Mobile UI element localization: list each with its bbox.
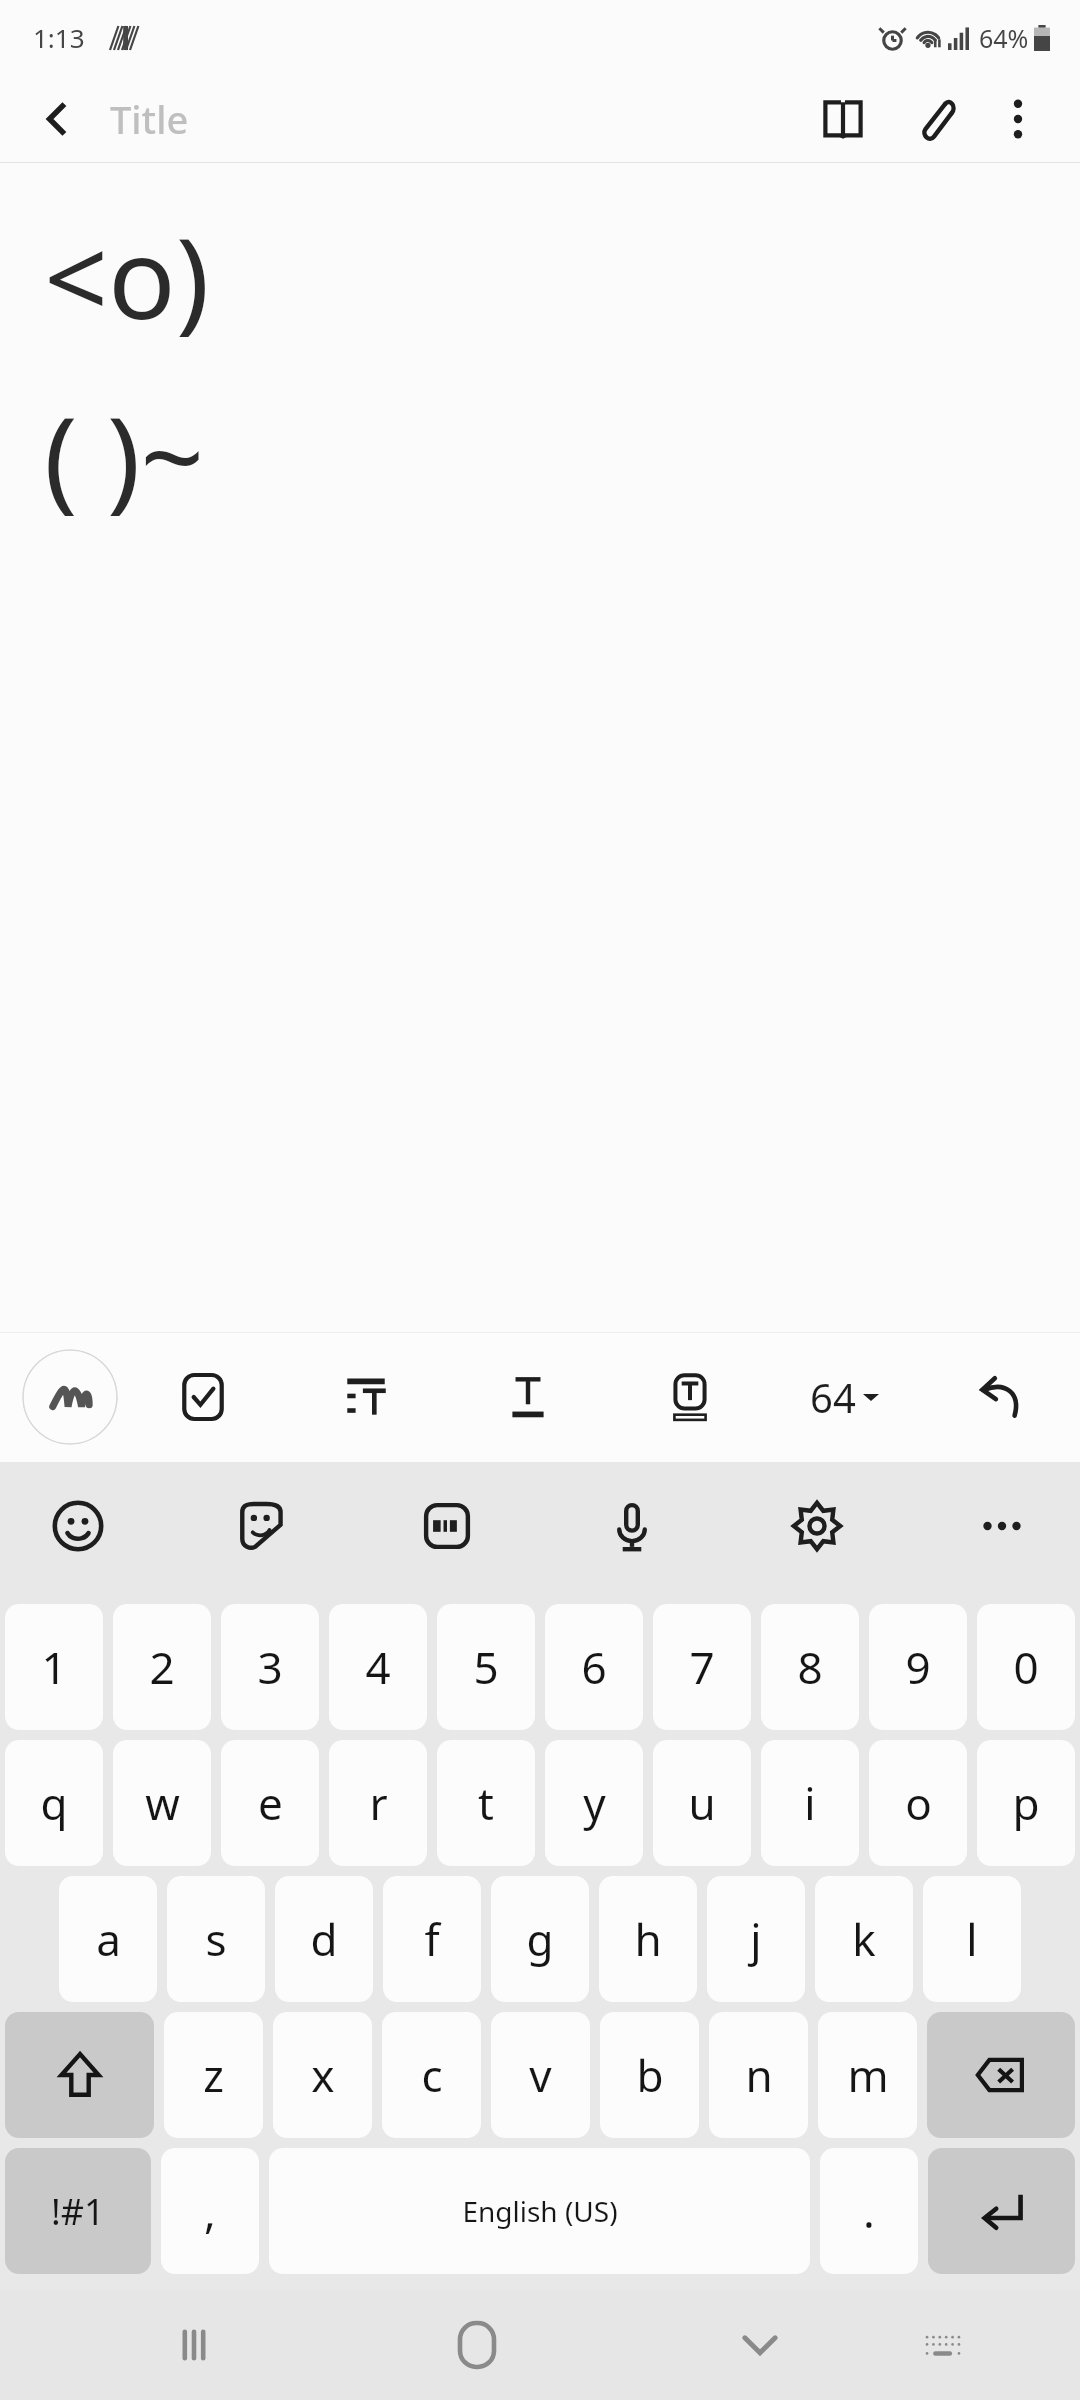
button[interactable]: h	[599, 1876, 697, 2002]
button[interactable]: 6	[545, 1604, 643, 1730]
staticText: q	[40, 1773, 68, 1833]
button[interactable]: 4	[329, 1604, 427, 1730]
staticText: x	[311, 2045, 335, 2105]
button[interactable]: Backspace	[927, 2012, 1075, 2138]
button[interactable]: Reading mode	[806, 82, 880, 156]
button[interactable]: m	[818, 2012, 917, 2138]
staticText: Title	[110, 93, 189, 145]
button[interactable]: Enter	[928, 2148, 1075, 2274]
button[interactable]: ,	[161, 2148, 259, 2274]
button[interactable]: b	[600, 2012, 699, 2138]
button[interactable]: k	[815, 1876, 913, 2002]
staticText: k	[852, 1909, 876, 1969]
button[interactable]: Stickers	[214, 1478, 310, 1574]
button[interactable]: y	[545, 1740, 643, 1866]
button[interactable]: l	[923, 1876, 1021, 2002]
button[interactable]: 3	[221, 1604, 319, 1730]
staticText: !#1	[51, 2187, 105, 2236]
staticText: t	[478, 1773, 494, 1833]
button[interactable]: c	[382, 2012, 481, 2138]
button[interactable]: z	[164, 2012, 263, 2138]
button[interactable]: More options	[986, 87, 1050, 151]
button[interactable]: f	[383, 1876, 481, 2002]
button[interactable]: Paragraph	[318, 1349, 414, 1445]
staticText: g	[526, 1909, 554, 1969]
staticText: 0	[1013, 1637, 1039, 1697]
button[interactable]: 5	[437, 1604, 535, 1730]
staticText: y	[583, 1773, 606, 1833]
button[interactable]: o	[869, 1740, 967, 1866]
button[interactable]: Keyboard settings	[769, 1478, 865, 1574]
button[interactable]: Emoji	[30, 1478, 126, 1574]
button[interactable]: GIF	[399, 1478, 495, 1574]
staticText: u	[688, 1773, 716, 1833]
staticText: c	[421, 2045, 443, 2105]
button[interactable]: !#1	[5, 2148, 151, 2274]
button[interactable]: q	[5, 1740, 103, 1866]
button[interactable]: 0	[977, 1604, 1075, 1730]
button[interactable]: Hide keyboard	[705, 2290, 815, 2400]
button[interactable]: 2	[113, 1604, 211, 1730]
button[interactable]: Checklist	[155, 1349, 251, 1445]
staticText: .	[863, 2181, 875, 2241]
button[interactable]: Attach	[898, 82, 972, 156]
staticText: 64%	[979, 21, 1029, 55]
button[interactable]: Text style	[480, 1349, 576, 1445]
staticText: f	[424, 1909, 440, 1969]
button[interactable]: 9	[869, 1604, 967, 1730]
staticText: s	[205, 1909, 227, 1969]
staticText: 1	[41, 1637, 67, 1697]
staticText: 9	[905, 1637, 931, 1697]
staticText: h	[634, 1909, 662, 1969]
button[interactable]: Text box	[642, 1349, 738, 1445]
button[interactable]: n	[709, 2012, 808, 2138]
button[interactable]: Handwriting	[22, 1349, 118, 1445]
button[interactable]: w	[113, 1740, 211, 1866]
staticText: 5	[473, 1637, 499, 1697]
button[interactable]: 1	[5, 1604, 103, 1730]
staticText: 64	[810, 1370, 856, 1424]
staticText: e	[258, 1773, 283, 1833]
button[interactable]: x	[273, 2012, 372, 2138]
button[interactable]: e	[221, 1740, 319, 1866]
button[interactable]: a	[59, 1876, 157, 2002]
staticText: d	[310, 1909, 338, 1969]
button[interactable]: Voice input	[584, 1478, 680, 1574]
staticText: v	[529, 2045, 552, 2105]
button[interactable]: .	[820, 2148, 918, 2274]
button[interactable]: d	[275, 1876, 373, 2002]
button[interactable]: Recents	[139, 2290, 249, 2400]
button[interactable]: j	[707, 1876, 805, 2002]
staticText: j	[750, 1909, 762, 1969]
staticText: z	[203, 2045, 224, 2105]
button[interactable]: Undo	[951, 1349, 1047, 1445]
button[interactable]: Change keyboard	[893, 2295, 993, 2395]
staticText: English (US)	[462, 2192, 618, 2230]
staticText: ( )~	[44, 378, 205, 531]
staticText: 4	[365, 1637, 391, 1697]
button[interactable]: t	[437, 1740, 535, 1866]
button[interactable]: More	[954, 1478, 1050, 1574]
button[interactable]: i	[761, 1740, 859, 1866]
button[interactable]: English (US)	[269, 2148, 810, 2274]
button[interactable]: 7	[653, 1604, 751, 1730]
staticText: m	[847, 2045, 889, 2105]
button[interactable]: s	[167, 1876, 265, 2002]
staticText: b	[636, 2045, 664, 2105]
staticText: w	[145, 1773, 180, 1833]
button[interactable]: Back	[26, 88, 88, 150]
button[interactable]: Home	[422, 2290, 532, 2400]
button[interactable]: Shift	[5, 2012, 154, 2138]
staticText: a	[96, 1909, 121, 1969]
button[interactable]: v	[491, 2012, 590, 2138]
staticText: 2	[149, 1637, 175, 1697]
button[interactable]: 64	[804, 1349, 885, 1445]
button[interactable]: r	[329, 1740, 427, 1866]
staticText: o	[905, 1773, 932, 1833]
button[interactable]: g	[491, 1876, 589, 2002]
button[interactable]: 8	[761, 1604, 859, 1730]
button[interactable]: u	[653, 1740, 751, 1866]
staticText: p	[1012, 1773, 1040, 1833]
staticText: 8	[797, 1637, 823, 1697]
button[interactable]: p	[977, 1740, 1075, 1866]
